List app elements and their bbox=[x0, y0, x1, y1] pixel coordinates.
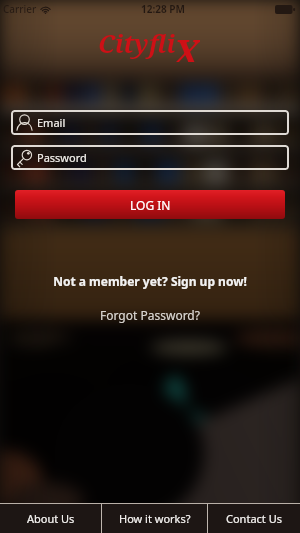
staticText: Cityfli bbox=[98, 26, 176, 60]
button[interactable]: How it works? bbox=[102, 504, 207, 533]
button[interactable]: Password bbox=[11, 145, 289, 170]
button[interactable]: Contact Us bbox=[208, 504, 300, 533]
button[interactable]: Forgot Password? bbox=[0, 306, 300, 324]
staticText: LOG IN bbox=[130, 197, 171, 213]
button[interactable]: Not a member yet? Sign up now! bbox=[0, 272, 300, 290]
staticText: Contact Us bbox=[226, 511, 282, 526]
staticText: How it works? bbox=[119, 511, 191, 526]
staticText: About Us bbox=[27, 511, 75, 526]
staticText: Password bbox=[37, 150, 87, 165]
staticText: 12:28 PM bbox=[141, 2, 185, 16]
button[interactable]: Email bbox=[11, 110, 289, 135]
button[interactable]: About Us bbox=[0, 504, 101, 533]
staticText: Email bbox=[37, 115, 66, 130]
staticText: Carrier bbox=[3, 2, 37, 16]
staticText: X bbox=[173, 28, 200, 62]
button[interactable]: LOG IN bbox=[15, 190, 285, 219]
